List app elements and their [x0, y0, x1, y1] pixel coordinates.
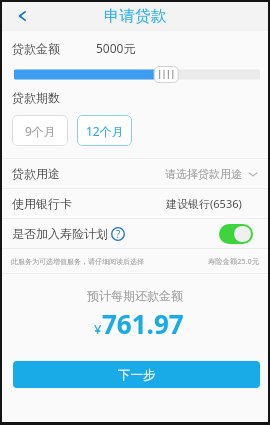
staticText: 请选择贷款用途 [165, 167, 242, 181]
staticText: ? [116, 227, 121, 241]
button[interactable]: 下一步 [13, 361, 260, 388]
button[interactable]: 9个月 [12, 115, 68, 146]
button[interactable]: Back [8, 2, 36, 30]
staticText: 9个月 [25, 123, 56, 139]
staticText: 761.97 [102, 306, 184, 341]
button[interactable]: 12个月 [77, 115, 132, 146]
staticText: 寿险金额25.0元 [208, 256, 259, 266]
staticText: 12个月 [86, 123, 124, 139]
button[interactable]: 贷款用途 [2, 159, 268, 188]
button[interactable]: Toggle life insurance plan [219, 224, 253, 244]
staticText: ¥ [94, 320, 102, 338]
staticText: 5000元 [96, 40, 136, 56]
staticText: 是否加入寿险计划 [12, 226, 108, 241]
staticText: 此服务为可选增值服务，请仔细阅读后选择 [11, 257, 144, 266]
button[interactable]: Help [111, 227, 125, 241]
staticText: 贷款期数 [12, 90, 60, 105]
staticText: 贷款金额 [12, 41, 60, 56]
staticText: 建设银行(6536) [166, 196, 242, 211]
staticText: 下一步 [118, 367, 156, 383]
button[interactable]: 使用银行卡 [2, 189, 268, 218]
staticText: 使用银行卡 [12, 196, 72, 211]
staticText: 预计每期还款金额 [87, 288, 183, 303]
staticText: 申请贷款 [104, 6, 166, 26]
staticText: 贷款用途 [12, 166, 60, 181]
